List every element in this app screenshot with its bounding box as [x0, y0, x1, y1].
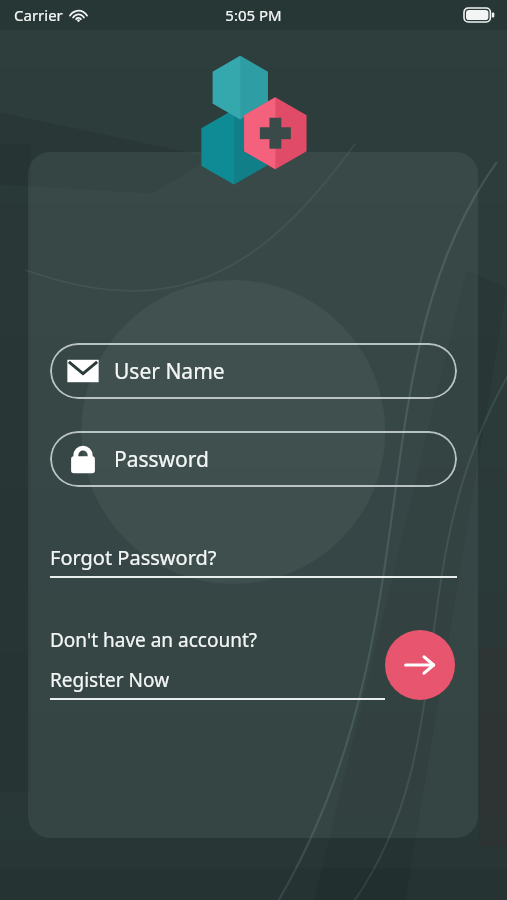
staticText: Register Now [50, 667, 170, 693]
staticText: 5:05 PM [225, 5, 282, 25]
button[interactable]: User Name [50, 343, 457, 399]
staticText: Don't have an account? [50, 627, 258, 653]
button[interactable]: Password [50, 431, 457, 487]
staticText: Forgot Password? [50, 544, 217, 571]
button[interactable]: Forgot Password? [50, 544, 457, 580]
button[interactable]: Sign in [385, 630, 455, 700]
staticText: Password [114, 445, 209, 474]
button[interactable]: Register Now [50, 667, 385, 702]
staticText: Carrier [14, 5, 63, 25]
staticText: User Name [114, 357, 225, 386]
